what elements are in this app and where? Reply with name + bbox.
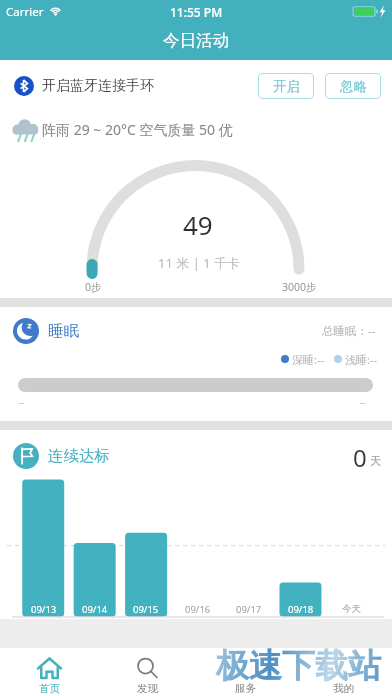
staticText: 今天 [342,603,361,615]
staticText: 09/16 [185,603,211,616]
button[interactable]: 连续达标 [0,430,392,619]
button[interactable]: 睡眠 [0,307,392,421]
staticText: 09/13 [31,603,57,616]
staticText: 11 米 | 1 千卡 [158,254,240,272]
staticText: 09/14 [82,603,108,616]
staticText: 天 [370,454,382,468]
staticText: 服务 [235,682,256,695]
button[interactable]: Home [0,648,98,696]
staticText: -- [360,396,366,408]
button[interactable]: 阵雨 29 ~ 20°C 空气质量 50 优 [0,112,392,146]
staticText: Carrier [6,4,44,20]
button[interactable]: Profile [294,648,392,696]
staticText: 开启蓝牙连接手环 [42,77,154,95]
staticText: 我的 [333,682,354,695]
staticText: 发现 [137,682,158,695]
staticText: 首页 [39,682,60,695]
staticText: 总睡眠：-- [322,323,376,339]
staticText: 忽略 [340,78,367,95]
staticText: 09/18 [288,603,314,616]
button[interactable]: Service [196,648,294,696]
staticText: 09/15 [133,603,159,616]
button[interactable]: 忽略 [325,73,381,99]
button[interactable]: 开启蓝牙连接手环 [0,62,392,110]
staticText: 49 [183,207,213,242]
staticText: 睡眠 [48,321,79,341]
staticText: 连续达标 [48,446,110,466]
staticText: 今日活动 [163,30,229,51]
staticText: 浅睡:-- [345,352,378,366]
staticText: 深睡:-- [292,352,325,366]
button[interactable]: 开启 [258,73,314,99]
button[interactable]: Discover [98,648,196,696]
staticText: 开启 [273,78,300,95]
staticText: -- [18,396,24,408]
staticText: 阵雨 29 ~ 20°C 空气质量 50 优 [42,120,233,139]
staticText: 09/17 [236,603,262,616]
staticText: 极速下载站 [216,645,381,687]
button[interactable]: 49 [0,146,392,298]
staticText: 3000步 [282,280,317,294]
staticText: 11:55 PM [170,4,223,20]
staticText: 0 [353,441,367,471]
staticText: 0步 [85,280,102,294]
